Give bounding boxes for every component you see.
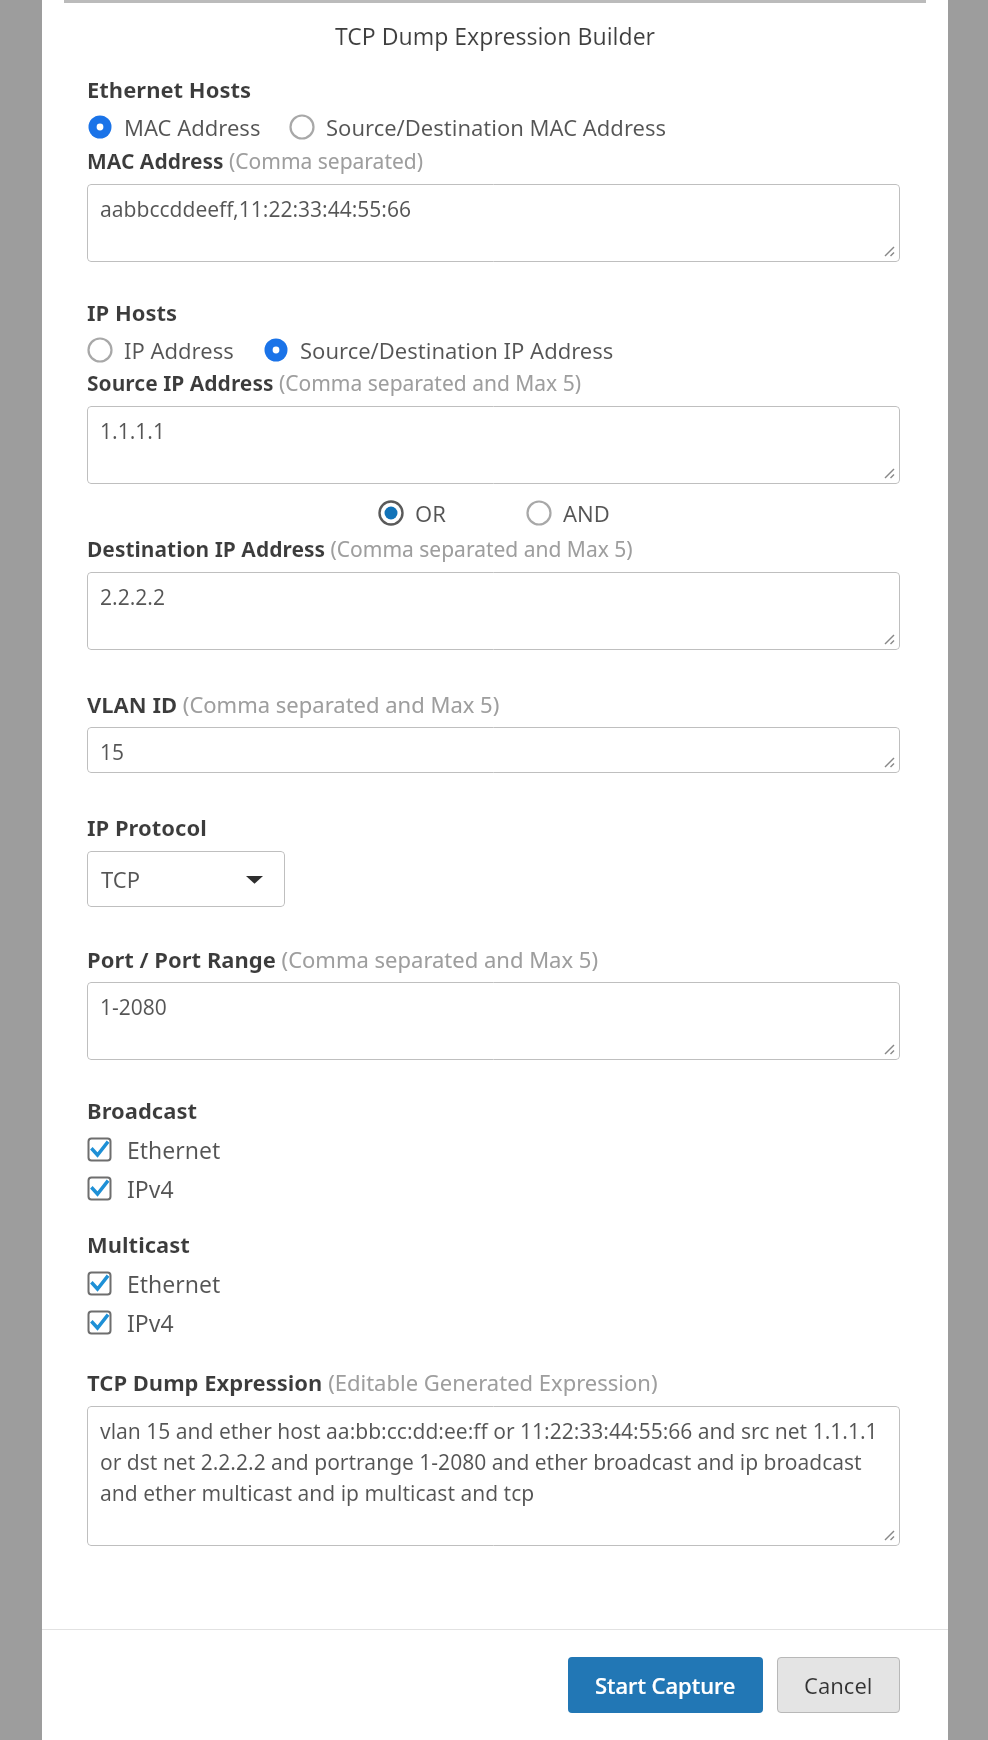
staticText: Port / Port Range (Comma separated and M…	[87, 944, 598, 974]
button[interactable]: IPv4	[87, 1169, 174, 1208]
staticText: Ethernet	[127, 1268, 221, 1299]
button[interactable]: 2.2.2.2	[87, 572, 900, 650]
button[interactable]: Source/Destination IP Address	[263, 335, 614, 365]
staticText: MAC Address	[124, 112, 261, 142]
staticText: aabbccddeeff,11:22:33:44:55:66	[100, 195, 884, 224]
staticText: 1-2080	[100, 993, 884, 1022]
button[interactable]: Ethernet	[87, 1130, 221, 1169]
staticText: IPv4	[127, 1307, 174, 1338]
button[interactable]: 1-2080	[87, 982, 900, 1060]
staticText: 1.1.1.1	[100, 417, 884, 446]
button[interactable]: TCP	[87, 851, 285, 907]
button[interactable]: 1.1.1.1	[87, 406, 900, 484]
staticText: Destination IP Address (Comma separated …	[87, 535, 633, 564]
staticText: Ethernet	[127, 1134, 221, 1165]
staticText: 2.2.2.2	[100, 583, 884, 612]
staticText: IP Address	[124, 335, 234, 365]
staticText: 15	[100, 738, 884, 767]
staticText: Source IP Address (Comma separated and M…	[87, 369, 582, 398]
staticText: AND	[563, 498, 610, 528]
button[interactable]: Source/Destination MAC Address	[289, 112, 667, 142]
staticText: vlan 15 and ether host aa:bb:cc:dd:ee:ff…	[100, 1417, 884, 1507]
staticText: Multicast	[87, 1229, 190, 1259]
button[interactable]: OR	[378, 498, 446, 528]
staticText: IP Protocol	[87, 812, 207, 842]
staticText: MAC Address (Comma separated)	[87, 147, 424, 176]
staticText: Source/Destination MAC Address	[326, 112, 667, 142]
staticText: TCP Dump Expression Builder	[42, 20, 948, 51]
staticText: Broadcast	[87, 1095, 197, 1125]
button[interactable]: IP Address	[87, 335, 234, 365]
button[interactable]: AND	[526, 498, 610, 528]
button[interactable]: MAC Address	[87, 112, 261, 142]
button[interactable]: vlan 15 and ether host aa:bb:cc:dd:ee:ff…	[87, 1406, 900, 1546]
staticText: TCP	[101, 864, 141, 894]
staticText: IP Hosts	[87, 297, 178, 327]
staticText: VLAN ID (Comma separated and Max 5)	[87, 689, 500, 719]
button[interactable]: Start Capture	[568, 1657, 763, 1713]
button[interactable]: IPv4	[87, 1303, 174, 1342]
staticText: IPv4	[127, 1173, 174, 1204]
button[interactable]: aabbccddeeff,11:22:33:44:55:66	[87, 184, 900, 262]
staticText: Cancel	[804, 1670, 873, 1700]
staticText: OR	[415, 498, 446, 528]
staticText: TCP Dump Expression (Editable Generated …	[87, 1367, 658, 1397]
button[interactable]: Ethernet	[87, 1264, 221, 1303]
button[interactable]: 15	[87, 727, 900, 773]
staticText: Ethernet Hosts	[87, 74, 252, 104]
button[interactable]: Cancel	[777, 1657, 900, 1713]
staticText: Start Capture	[595, 1670, 736, 1700]
staticText: Source/Destination IP Address	[300, 335, 614, 365]
